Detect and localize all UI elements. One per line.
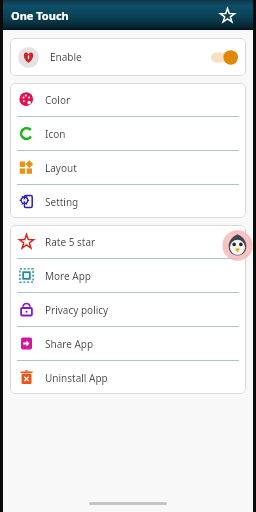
staticText: Setting bbox=[45, 195, 79, 209]
button[interactable]: More App bbox=[10, 259, 246, 292]
staticText: Uninstall App bbox=[45, 371, 108, 385]
button[interactable]: Setting bbox=[10, 185, 246, 218]
button[interactable]: Share App bbox=[10, 327, 246, 360]
staticText: One Touch bbox=[11, 8, 69, 23]
staticText: Rate 5 star bbox=[45, 235, 96, 249]
staticText: Color bbox=[45, 93, 71, 107]
staticText: Enable bbox=[50, 50, 82, 64]
staticText: Icon bbox=[45, 127, 66, 141]
button[interactable]: Assistant bbox=[221, 229, 254, 262]
button[interactable]: Enable toggle bbox=[211, 49, 238, 66]
button[interactable]: Rate 5 star bbox=[10, 225, 246, 258]
staticText: Privacy policy bbox=[45, 303, 109, 317]
staticText: More App bbox=[45, 269, 91, 283]
button[interactable]: Favorite bbox=[215, 3, 239, 27]
button[interactable]: Color bbox=[10, 83, 246, 116]
button[interactable]: Uninstall App bbox=[10, 361, 246, 394]
staticText: Layout bbox=[45, 161, 77, 175]
staticText: Share App bbox=[45, 337, 94, 351]
button[interactable]: Enable bbox=[10, 38, 246, 76]
button[interactable]: Icon bbox=[10, 117, 246, 150]
button[interactable]: Privacy policy bbox=[10, 293, 246, 326]
button[interactable]: Layout bbox=[10, 151, 246, 184]
